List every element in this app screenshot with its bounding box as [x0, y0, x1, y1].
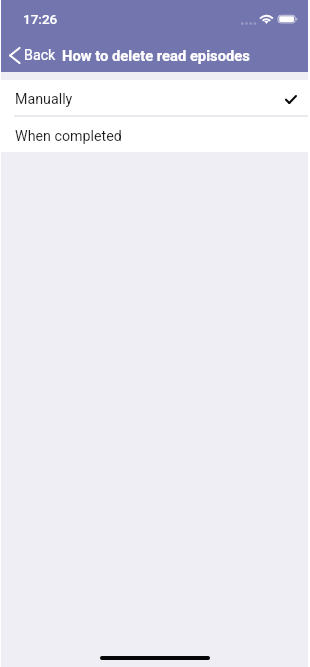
other: Selected — [285, 95, 297, 104]
staticText: 17:26 — [23, 11, 58, 27]
button[interactable]: Back — [1, 45, 60, 64]
staticText: When completed — [15, 128, 122, 145]
staticText: How to delete read episodes — [62, 47, 250, 64]
button[interactable]: Manually — [1, 80, 308, 115]
other: Back — [9, 46, 20, 65]
button[interactable]: When completed — [1, 117, 308, 152]
staticText: Back — [24, 47, 56, 64]
staticText: Manually — [15, 91, 73, 108]
